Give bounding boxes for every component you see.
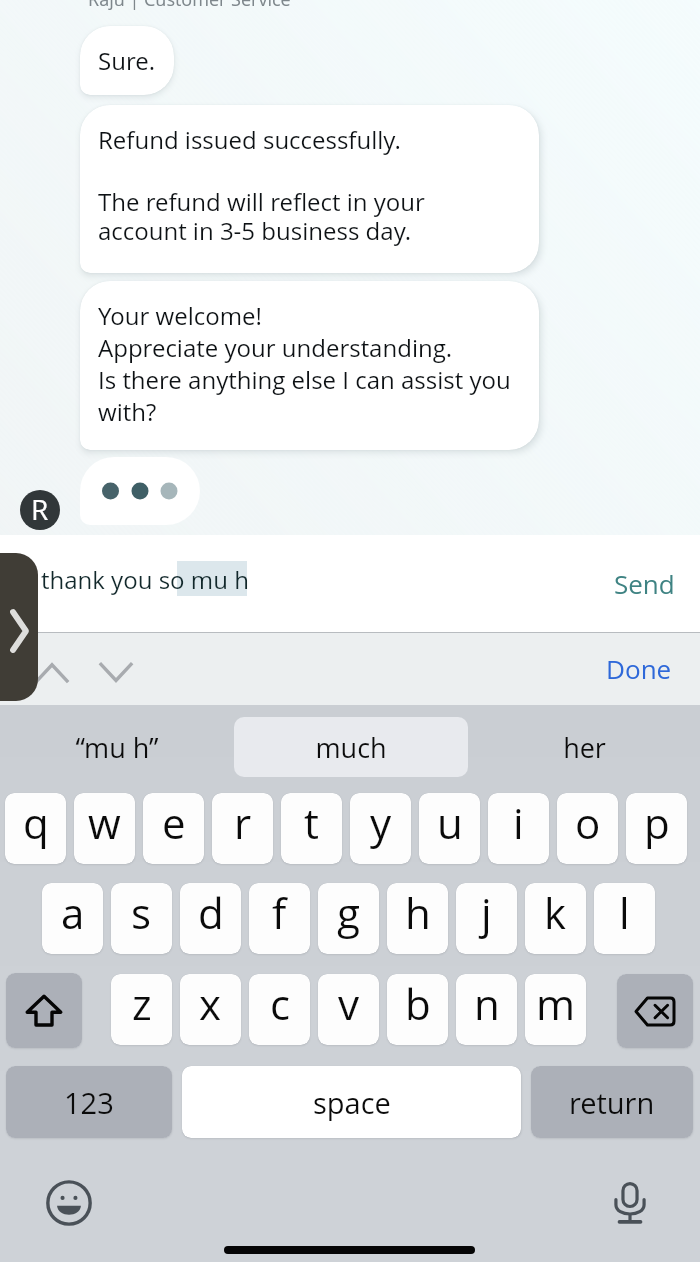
button[interactable]: Next field (86, 645, 146, 691)
staticText: c (270, 975, 290, 1032)
staticText: v (338, 975, 360, 1032)
button[interactable]: h (387, 883, 448, 954)
staticText: x (199, 975, 222, 1032)
button[interactable]: Done (606, 651, 672, 686)
button[interactable]: k (525, 883, 586, 954)
button[interactable]: j (456, 883, 517, 954)
staticText: t (304, 794, 319, 851)
button[interactable]: y (350, 793, 411, 864)
staticText: u (437, 794, 463, 851)
staticText: n (474, 975, 500, 1032)
staticText: j (481, 884, 492, 941)
staticText: space (313, 1083, 391, 1122)
staticText: z (132, 975, 152, 1032)
button[interactable]: p (626, 793, 687, 864)
button[interactable]: Backspace (617, 974, 693, 1048)
button[interactable]: Open drawer (0, 553, 38, 701)
button[interactable]: Shift (6, 973, 82, 1048)
staticText: “mu h” (75, 729, 159, 766)
button[interactable]: s (111, 883, 172, 954)
staticText: Done (606, 651, 672, 686)
staticText: k (544, 884, 567, 941)
staticText: Send (614, 566, 675, 601)
button[interactable]: b (387, 974, 448, 1045)
button[interactable]: x (180, 974, 241, 1045)
button[interactable]: r (212, 793, 273, 864)
button[interactable]: z (111, 974, 172, 1045)
button[interactable]: “mu h” (0, 717, 234, 777)
staticText: return (569, 1083, 655, 1122)
button[interactable]: much (234, 717, 468, 777)
staticText: R (31, 490, 49, 528)
button[interactable]: v (318, 974, 379, 1045)
button[interactable]: g (318, 883, 379, 954)
button[interactable]: a (42, 883, 103, 954)
staticText: p (644, 794, 670, 851)
button[interactable]: space (182, 1066, 521, 1138)
staticText: Your welcome! Appreciate your understand… (98, 299, 511, 428)
staticText: w (88, 794, 121, 851)
button[interactable]: m (525, 974, 586, 1045)
staticText: thank you so mu h (41, 563, 249, 596)
button[interactable]: t (281, 793, 342, 864)
staticText: her (563, 729, 606, 766)
button[interactable]: Previous field (22, 645, 82, 691)
button[interactable]: Dictation (606, 1179, 654, 1227)
button[interactable]: w (74, 793, 135, 864)
staticText: r (234, 794, 252, 851)
staticText: s (131, 884, 152, 941)
button[interactable]: l (594, 883, 655, 954)
button[interactable]: d (180, 883, 241, 954)
button[interactable]: c (249, 974, 310, 1045)
button[interactable]: return (531, 1066, 693, 1138)
staticText: l (619, 884, 630, 941)
staticText: y (370, 794, 392, 851)
staticText: q (23, 794, 49, 851)
staticText: Sure. (98, 44, 156, 77)
staticText: i (513, 794, 524, 851)
staticText: d (198, 884, 224, 941)
button[interactable]: 123 (6, 1066, 172, 1138)
staticText: The refund will reflect in your account … (98, 185, 425, 247)
staticText: h (405, 884, 431, 941)
button[interactable]: Send (614, 566, 675, 601)
staticText: 123 (64, 1083, 114, 1122)
staticText: f (272, 884, 287, 941)
button[interactable]: o (557, 793, 618, 864)
staticText: a (61, 884, 85, 941)
button[interactable]: u (419, 793, 480, 864)
button[interactable]: n (456, 974, 517, 1045)
button[interactable]: her (468, 717, 700, 777)
staticText: Raju | Customer Service (88, 0, 291, 12)
staticText: e (162, 794, 186, 851)
staticText: o (575, 794, 601, 851)
staticText: Refund issued successfully. (98, 123, 401, 156)
staticText: much (315, 729, 387, 766)
button[interactable]: f (249, 883, 310, 954)
staticText: m (536, 975, 576, 1032)
staticText: b (405, 975, 431, 1032)
button[interactable]: q (5, 793, 66, 864)
staticText: g (337, 884, 361, 941)
button[interactable]: Emoji (45, 1179, 93, 1227)
button[interactable]: e (143, 793, 204, 864)
button[interactable]: i (488, 793, 549, 864)
